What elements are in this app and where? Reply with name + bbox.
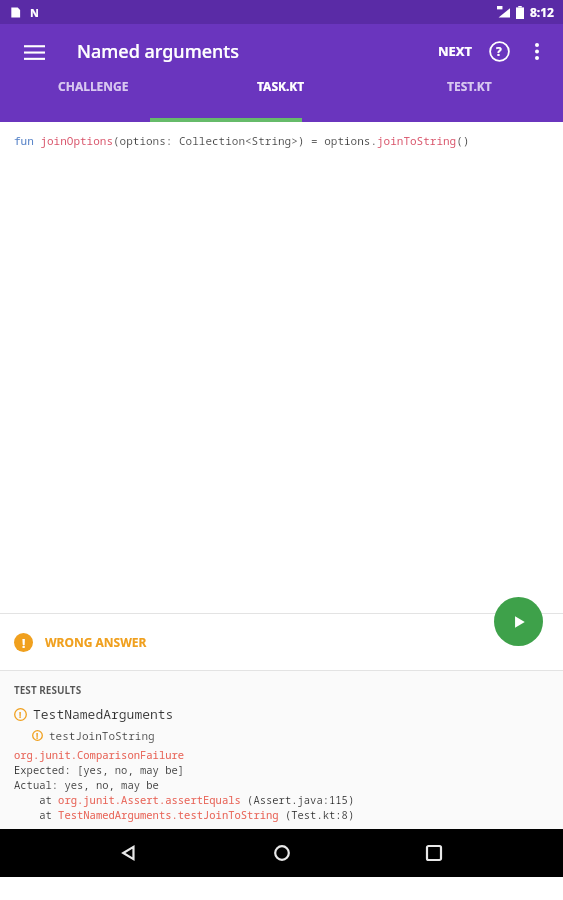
button[interactable]: Back [105,829,153,877]
staticText: org.junit.ComparisonFailure Expected: [y… [14,748,355,822]
button[interactable]: More options [519,33,555,69]
button[interactable]: NEXT [438,42,473,60]
staticText: Named arguments [77,39,239,64]
staticText: TestNamedArguments [33,705,174,723]
staticText: fun joinOptions(options: Collection<Stri… [14,133,470,148]
staticText: 8:12 [530,4,554,20]
staticText: testJoinToString [49,728,155,743]
staticText: ! [36,730,39,741]
button[interactable]: TASK.KT [187,78,375,94]
button[interactable]: Help [479,31,519,71]
button[interactable]: Recent apps [410,829,458,877]
staticText: ! [22,635,26,651]
staticText: ? [496,43,502,59]
staticText: ! [19,709,22,720]
staticText: CHALLENGE [58,78,129,94]
staticText: TASK.KT [257,78,305,94]
staticText: TEST.KT [447,78,492,94]
button[interactable]: Open navigation drawer [14,31,54,71]
staticText: WRONG ANSWER [45,634,147,650]
staticText: TEST RESULTS [14,683,82,697]
button[interactable]: Home [258,829,306,877]
button[interactable]: Run [494,597,543,646]
button[interactable]: TEST.KT [375,78,563,94]
button[interactable]: ! [0,614,563,670]
staticText: NEXT [438,42,473,60]
button[interactable]: CHALLENGE [0,78,187,94]
staticText: N [30,5,39,20]
